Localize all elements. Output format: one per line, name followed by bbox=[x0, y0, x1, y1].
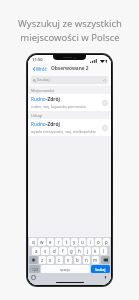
button[interactable]: c bbox=[56, 256, 63, 264]
staticText: j bbox=[87, 248, 89, 254]
staticText: miejscowości w Polsce bbox=[20, 31, 120, 44]
button[interactable]: Usuń bbox=[101, 256, 110, 264]
button[interactable]: Wróć bbox=[31, 65, 48, 73]
staticText: -Zdrój bbox=[46, 121, 60, 128]
staticText: b bbox=[76, 257, 79, 263]
staticText: Usługi bbox=[31, 113, 43, 118]
staticText: Rudno bbox=[31, 121, 46, 128]
staticText: 123 bbox=[32, 267, 38, 272]
button[interactable]: n bbox=[83, 256, 90, 264]
button[interactable]: spacja bbox=[41, 265, 90, 273]
button[interactable]: z bbox=[39, 256, 46, 264]
staticText: v bbox=[67, 257, 70, 263]
button[interactable]: Rudno bbox=[28, 119, 111, 136]
staticText: l bbox=[103, 248, 105, 254]
staticText: Wróć bbox=[36, 66, 47, 72]
staticText: a bbox=[35, 248, 38, 254]
button[interactable]: f bbox=[59, 247, 67, 255]
staticText: Szukaj bbox=[37, 77, 50, 83]
staticText: h bbox=[78, 248, 81, 254]
staticText: c bbox=[58, 257, 61, 263]
button[interactable]: q bbox=[29, 238, 37, 246]
staticText: i bbox=[90, 239, 92, 245]
button[interactable]: l bbox=[100, 247, 107, 255]
button[interactable]: t bbox=[63, 238, 70, 246]
staticText: wywóz nieczystości, woj. wielkopolskie bbox=[31, 129, 96, 134]
staticText: r bbox=[58, 239, 60, 245]
staticText: m bbox=[93, 257, 98, 263]
button[interactable]: r bbox=[55, 238, 62, 246]
staticText: t bbox=[66, 239, 68, 245]
staticText: Rudno bbox=[31, 96, 46, 103]
staticText: spacja bbox=[60, 267, 71, 272]
button[interactable]: j bbox=[84, 247, 91, 255]
staticText: 11:50 bbox=[32, 57, 43, 63]
button[interactable]: Rudno bbox=[28, 94, 111, 111]
staticText: u bbox=[81, 239, 84, 245]
staticText: Szukaj bbox=[95, 267, 106, 272]
staticText: g bbox=[70, 248, 73, 254]
staticText: e bbox=[49, 239, 52, 245]
button[interactable]: a bbox=[32, 247, 40, 255]
button[interactable]: h bbox=[76, 247, 83, 255]
button[interactable]: e bbox=[47, 238, 54, 246]
button[interactable]: v bbox=[65, 256, 72, 264]
button[interactable]: Emoji bbox=[31, 275, 36, 280]
staticText: z bbox=[41, 257, 44, 263]
button[interactable]: Szukaj bbox=[31, 76, 108, 84]
staticText: q bbox=[32, 239, 35, 245]
button[interactable]: u bbox=[79, 238, 86, 246]
button[interactable]: y bbox=[71, 238, 78, 246]
staticText: -Zdrój bbox=[46, 96, 60, 103]
staticText: p bbox=[105, 239, 108, 245]
staticText: x bbox=[49, 257, 52, 263]
button[interactable]: Dyktowanie bbox=[103, 275, 108, 280]
button[interactable]: k bbox=[92, 247, 99, 255]
staticText: k bbox=[94, 248, 97, 254]
button[interactable]: m bbox=[92, 256, 99, 264]
staticText: rudno, woj. kujawsko-pomorskie bbox=[31, 104, 86, 109]
staticText: Wyszukuj ze wszystkich bbox=[18, 17, 122, 30]
button[interactable]: b bbox=[74, 256, 81, 264]
staticText: Miejscowości bbox=[31, 88, 55, 93]
button[interactable]: s bbox=[41, 247, 49, 255]
other: Wyczyść bbox=[103, 79, 106, 82]
staticText: o bbox=[97, 239, 100, 245]
other: Obserwuj bbox=[102, 125, 108, 131]
staticText: y bbox=[73, 239, 76, 245]
button[interactable]: Szukaj bbox=[91, 265, 110, 273]
button[interactable]: 123 bbox=[29, 265, 40, 273]
button[interactable]: i bbox=[87, 238, 94, 246]
button[interactable]: p bbox=[103, 238, 110, 246]
button[interactable]: x bbox=[47, 256, 54, 264]
button[interactable]: d bbox=[50, 247, 58, 255]
staticText: f bbox=[62, 248, 64, 254]
button[interactable]: Shift bbox=[29, 256, 38, 264]
button[interactable]: w bbox=[38, 238, 46, 246]
staticText: s bbox=[44, 248, 47, 254]
staticText: Obserwowane 2 bbox=[51, 65, 89, 72]
staticText: d bbox=[53, 248, 56, 254]
staticText: n bbox=[85, 257, 88, 263]
button[interactable]: o bbox=[95, 238, 102, 246]
button[interactable]: g bbox=[68, 247, 75, 255]
other: Obserwuj bbox=[102, 100, 108, 106]
staticText: w bbox=[40, 239, 44, 245]
